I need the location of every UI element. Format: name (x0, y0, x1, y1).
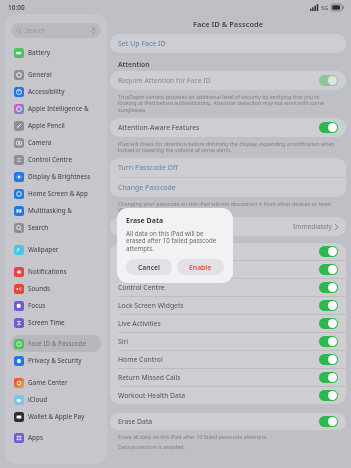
staticText: Require Passcode (118, 222, 293, 232)
button[interactable]: Home Screen & App Library (11, 185, 101, 202)
button[interactable]: Require Attention for Face ID (110, 71, 346, 90)
button[interactable]: Siri (110, 333, 346, 350)
staticText: Search (28, 223, 49, 232)
button[interactable]: Sounds (11, 280, 101, 297)
button[interactable]: Erase Data (110, 413, 346, 430)
button[interactable]: Apple Intelligence & Siri (11, 100, 101, 117)
button[interactable]: General (11, 66, 101, 83)
staticText: Return Missed Calls (118, 373, 319, 382)
staticText: Require Attention for Face ID (118, 76, 319, 85)
button[interactable]: Control Centre (11, 151, 101, 168)
staticText: Face ID & Passcode (28, 339, 87, 348)
button[interactable]: Toggle (319, 122, 338, 133)
staticText: Face ID & Passcode (193, 19, 264, 29)
button[interactable]: Change Passcode (110, 178, 346, 197)
staticText: iCloud (28, 395, 48, 404)
button[interactable]: Cancel (126, 259, 172, 275)
staticText: Workout Health Data (118, 391, 319, 400)
button[interactable]: Return Missed Calls (110, 369, 346, 386)
button[interactable]: Toggle (319, 372, 338, 383)
staticText: Cancel (138, 263, 160, 272)
staticText: Changing your passcode on this iPad will… (118, 200, 336, 214)
staticText: Erase all data on this iPad after 10 fai… (118, 433, 268, 440)
staticText: Apps (28, 433, 43, 442)
button[interactable]: Multitasking & Gestures (11, 202, 101, 219)
button[interactable]: Face ID & Passcode (11, 335, 101, 352)
staticText: Apple Pencil (28, 121, 65, 130)
button[interactable]: Control Centre (110, 279, 346, 296)
button[interactable]: Attention-Aware Features (110, 118, 346, 137)
button[interactable]: Toggle (319, 75, 338, 86)
button[interactable]: Toggle (319, 300, 338, 311)
staticText: Attention-Aware Features (118, 123, 319, 132)
staticText: Search (25, 26, 91, 35)
button[interactable]: Display & Brightness (11, 168, 101, 185)
button[interactable]: Toggle (319, 390, 338, 401)
staticText: Battery (28, 48, 51, 57)
button[interactable]: Focus (11, 297, 101, 314)
staticText: Camera (28, 138, 52, 147)
button[interactable]: Apple Pencil (11, 117, 101, 134)
button[interactable]: Toggle (319, 264, 338, 275)
staticText: Change Passcode (118, 183, 176, 193)
button[interactable]: Accessibility (11, 83, 101, 100)
staticText: Privacy & Security (28, 356, 82, 365)
button[interactable]: Battery (11, 44, 101, 61)
button[interactable]: Search (11, 23, 101, 38)
staticText: Game Center (28, 378, 68, 387)
staticText: 5G (321, 4, 329, 11)
staticText: Display & Brightness (28, 172, 91, 181)
staticText: Turn Passcode Off (118, 163, 178, 173)
staticText: Multitasking & Gestures (28, 206, 98, 215)
staticText: Immediately (293, 222, 332, 231)
staticText: General (28, 70, 52, 79)
staticText: Apple Intelligence & Siri (28, 104, 98, 113)
button[interactable]: Toggle (319, 282, 338, 293)
button[interactable]: iCloud (11, 391, 101, 408)
staticText: Enable (189, 263, 212, 272)
staticText: Notification Centre (118, 265, 319, 274)
button[interactable]: Camera (11, 134, 101, 151)
button[interactable]: Live Activities (110, 315, 346, 332)
staticText: Erase Data (118, 417, 319, 426)
staticText: All data on this iPad will be erased aft… (126, 229, 224, 253)
button[interactable]: Notification Centre (110, 261, 346, 278)
button[interactable]: Workout Health Data (110, 387, 346, 404)
staticText: Control Centre (28, 155, 73, 164)
button[interactable]: Apps (11, 429, 101, 446)
staticText: TrueDepth camera provides an additional … (118, 93, 336, 114)
button[interactable]: Notifications (11, 263, 101, 280)
staticText: Erase Data (126, 216, 164, 226)
staticText: Set Up Face ID (118, 39, 166, 49)
button[interactable]: Game Center (11, 374, 101, 391)
staticText: Focus (28, 301, 46, 310)
staticText: Home Screen & App Library (28, 189, 98, 198)
button[interactable]: Toggle (319, 336, 338, 347)
button[interactable]: Require Passcode (110, 217, 346, 236)
staticText: iPad will check for attention before dim… (118, 140, 336, 154)
button[interactable]: Wallpaper (11, 241, 101, 258)
button[interactable]: Toggle (319, 246, 338, 257)
button[interactable]: Wallet & Apple Pay (11, 408, 101, 425)
button[interactable]: Search (11, 219, 101, 236)
staticText: Notifications (28, 267, 67, 276)
button[interactable]: Privacy & Security (11, 352, 101, 369)
staticText: Data protection is enabled. (118, 443, 186, 450)
staticText: Wallpaper (28, 245, 59, 254)
staticText: Accessibility (28, 87, 65, 96)
button[interactable]: Toggle (319, 354, 338, 365)
button[interactable]: Home Control (110, 351, 346, 368)
button[interactable]: Today View and Search (110, 243, 346, 260)
staticText: 10:00 (8, 3, 25, 12)
button[interactable]: Enable (177, 259, 224, 275)
staticText: Live Activities (118, 319, 319, 328)
button[interactable]: Turn Passcode Off (110, 158, 346, 177)
button[interactable]: Screen Time (11, 314, 101, 331)
button[interactable]: Set Up Face ID (110, 34, 346, 53)
staticText: Siri (118, 337, 319, 346)
button[interactable]: Lock Screen Widgets (110, 297, 346, 314)
button[interactable]: Toggle (319, 416, 338, 427)
staticText: Today View and Search (118, 247, 319, 256)
button[interactable]: Toggle (319, 318, 338, 329)
staticText: Home Control (118, 355, 319, 364)
